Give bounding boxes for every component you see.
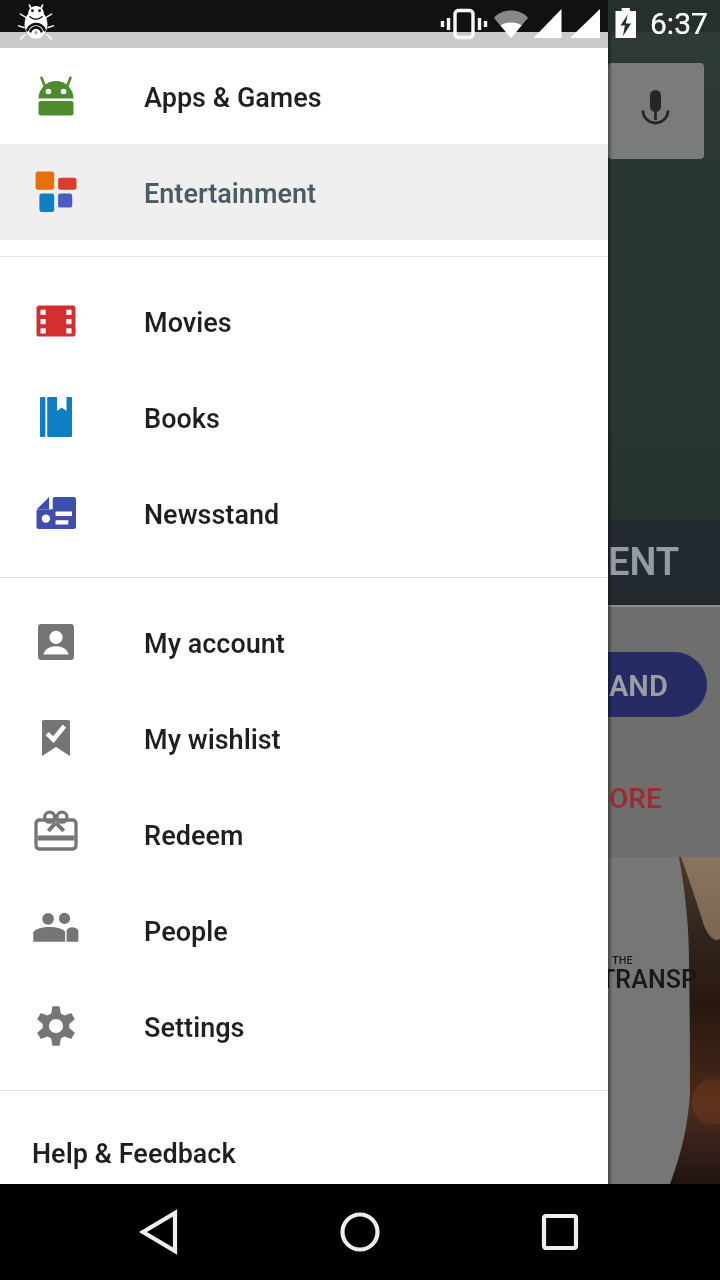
staticText: TRANSP	[600, 965, 697, 994]
button[interactable]: Settings	[0, 978, 608, 1074]
staticText: ENT	[608, 540, 680, 585]
staticText: THE	[612, 954, 633, 967]
button[interactable]: Books	[0, 369, 608, 465]
staticText: My wishlist	[144, 724, 281, 756]
button[interactable]: Entertainment	[0, 144, 608, 240]
staticText: People	[144, 916, 228, 948]
staticText: Books	[144, 403, 220, 435]
button[interactable]: My wishlist	[0, 690, 608, 786]
button[interactable]: Back	[112, 1184, 208, 1280]
staticText: AND	[609, 669, 668, 703]
button[interactable]: My account	[0, 594, 608, 690]
button[interactable]	[556, 652, 707, 717]
button[interactable]: People	[0, 882, 608, 978]
button[interactable]: Recent apps	[512, 1184, 608, 1280]
staticText: Movies	[144, 307, 232, 339]
staticText: Newsstand	[144, 499, 280, 531]
button[interactable]: Apps & Games	[0, 48, 608, 144]
button[interactable]: Home	[312, 1184, 408, 1280]
button[interactable]: Newsstand	[0, 465, 608, 561]
staticText: Help & Feedback	[32, 1138, 236, 1170]
staticText: Apps & Games	[144, 82, 322, 114]
staticText: My account	[144, 628, 285, 660]
staticText: Entertainment	[144, 178, 317, 210]
button[interactable]: Help & Feedback	[0, 1107, 608, 1184]
staticText: Redeem	[144, 820, 244, 852]
staticText: Settings	[144, 1012, 245, 1044]
button[interactable]: Voice search	[608, 63, 704, 159]
button[interactable]: Redeem	[0, 786, 608, 882]
staticText: ORE	[609, 782, 662, 815]
staticText: 6:37	[650, 6, 708, 41]
button[interactable]: Movies	[0, 273, 608, 369]
